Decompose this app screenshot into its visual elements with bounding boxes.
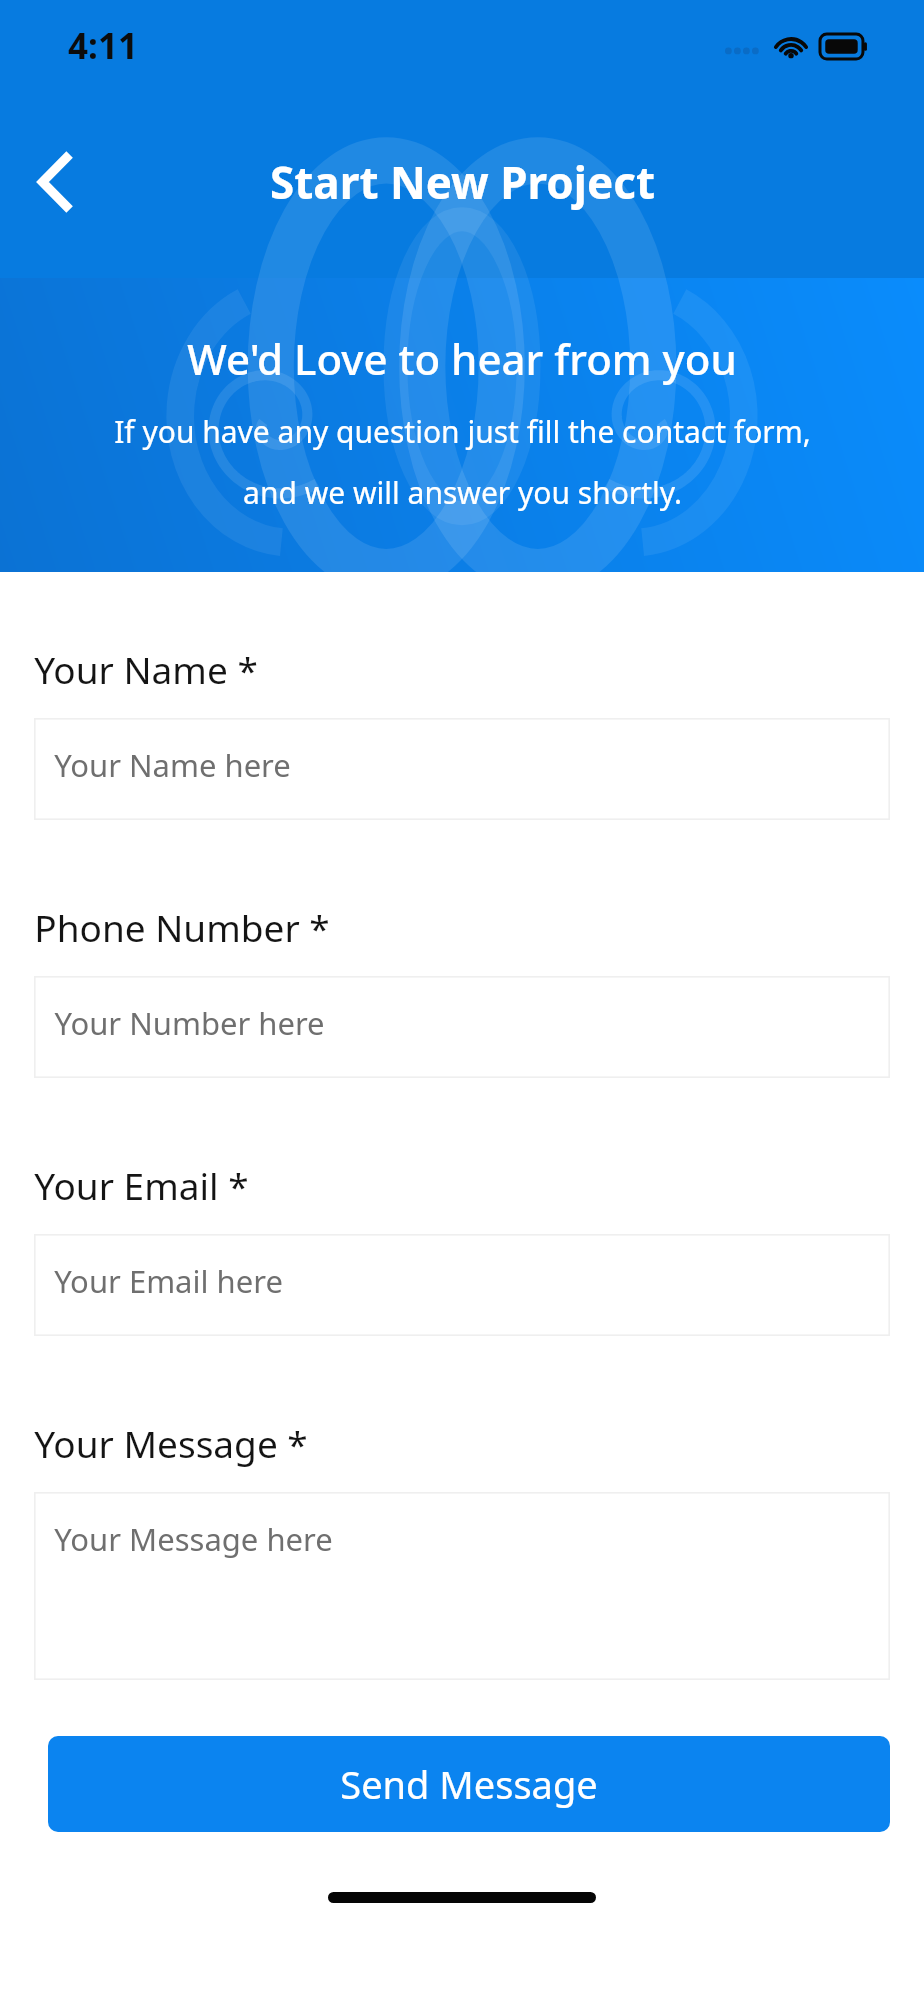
button[interactable]: Your Email here xyxy=(34,1234,890,1336)
staticText: Your Name * xyxy=(34,644,258,694)
button[interactable]: Send Message xyxy=(48,1736,890,1832)
staticText: Your Message * xyxy=(34,1418,308,1468)
button[interactable]: Your Number here xyxy=(34,976,890,1078)
staticText: Your Number here xyxy=(54,1002,325,1044)
staticText: Your Email * xyxy=(34,1160,249,1210)
staticText: Your Email here xyxy=(54,1260,283,1302)
button[interactable]: Back xyxy=(12,139,98,225)
staticText: Your Name here xyxy=(54,744,291,786)
staticText: Your Message here xyxy=(54,1518,333,1560)
staticText: Send Message xyxy=(340,1758,598,1810)
button[interactable]: Your Message here xyxy=(34,1492,890,1680)
staticText: We'd Love to hear from you xyxy=(187,330,737,387)
staticText: Start New Project xyxy=(270,152,655,212)
staticText: If you have any question just fill the c… xyxy=(114,411,811,452)
staticText: Phone Number * xyxy=(34,902,330,952)
staticText: 4:11 xyxy=(68,22,138,70)
staticText: and we will answer you shortly. xyxy=(243,472,682,513)
button[interactable]: Your Name here xyxy=(34,718,890,820)
